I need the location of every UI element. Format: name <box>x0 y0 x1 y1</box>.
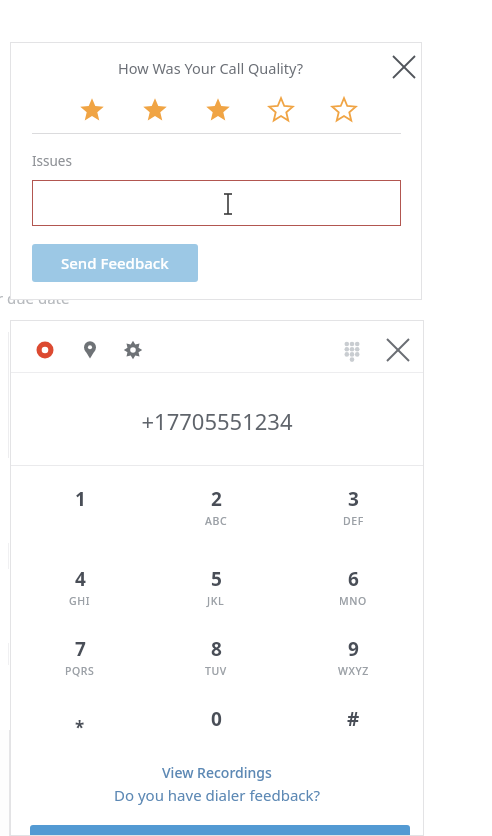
button[interactable]: Close feedback <box>387 50 421 84</box>
button[interactable]: View Recordings <box>130 760 304 784</box>
staticText: # <box>347 706 360 732</box>
button[interactable]: 2 <box>171 486 261 548</box>
staticText: JKL <box>207 594 225 608</box>
staticText: Issues <box>32 152 72 170</box>
button[interactable]: 5 <box>171 566 261 628</box>
button[interactable]: 0 <box>171 706 261 768</box>
button[interactable]: Call <box>30 825 410 836</box>
button[interactable]: Do you have dialer feedback? <box>70 782 364 808</box>
staticText: r due date <box>0 288 70 308</box>
staticText: 9 <box>348 636 359 662</box>
button[interactable]: Rate 2 stars <box>136 91 174 129</box>
staticText: 8 <box>211 636 222 662</box>
button[interactable]: Issues input <box>32 180 401 226</box>
staticText: Do you have dialer feedback? <box>114 785 321 805</box>
staticText: TUV <box>205 664 227 678</box>
button[interactable]: Record call <box>28 333 62 367</box>
staticText: How Was Your Call Quality? <box>118 58 304 78</box>
button[interactable]: Settings <box>116 333 150 367</box>
button[interactable]: Rate 1 stars <box>73 91 111 129</box>
staticText: +17705551234 <box>10 406 424 436</box>
staticText: 7 <box>75 636 86 662</box>
button[interactable]: Send Feedback <box>32 244 198 282</box>
button[interactable]: Rate 3 stars <box>199 91 237 129</box>
button[interactable]: 7 <box>35 636 125 698</box>
staticText: 3 <box>348 486 359 512</box>
staticText: DEF <box>343 514 364 528</box>
staticText: 1 <box>75 486 86 512</box>
staticText: * <box>75 716 85 739</box>
staticText: View Recordings <box>162 763 272 782</box>
staticText: 2 <box>211 486 222 512</box>
staticText: 4 <box>75 566 86 592</box>
staticText: 6 <box>348 566 359 592</box>
staticText: Send Feedback <box>61 253 169 273</box>
staticText: ABC <box>205 514 228 528</box>
button[interactable]: 6 <box>308 566 398 628</box>
button[interactable]: Show dialpad <box>335 333 369 367</box>
button[interactable]: Rate 4 stars <box>262 91 300 129</box>
button[interactable]: 1 <box>35 486 125 548</box>
staticText: GHI <box>69 594 91 608</box>
staticText: PQRS <box>65 664 95 678</box>
button[interactable]: Rate 5 stars <box>325 91 363 129</box>
button[interactable]: 9 <box>308 636 398 698</box>
staticText: 5 <box>211 566 222 592</box>
button[interactable]: * <box>35 706 125 768</box>
button[interactable]: Location <box>73 333 107 367</box>
button[interactable]: 8 <box>171 636 261 698</box>
staticText: 0 <box>211 706 222 732</box>
button[interactable]: # <box>308 706 398 768</box>
staticText: WXYZ <box>338 664 369 678</box>
button[interactable]: Close dialer <box>381 333 415 367</box>
staticText: MNO <box>339 594 367 608</box>
button[interactable]: 3 <box>308 486 398 548</box>
button[interactable]: 4 <box>35 566 125 628</box>
